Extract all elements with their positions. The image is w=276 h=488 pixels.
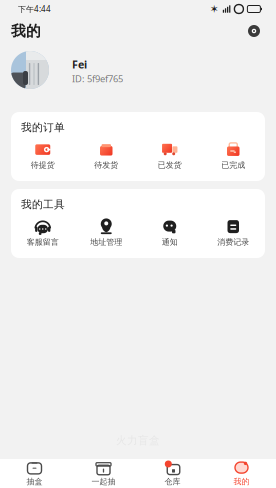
button[interactable]: 抽盒 [0,456,69,488]
staticText: ID: 5f9ef765 [72,72,123,85]
button[interactable]: 已发货 [138,142,201,170]
staticText: ✶ [210,3,219,15]
staticText: Fei [72,57,87,71]
staticText: 我的 [11,22,41,40]
button[interactable]: Settings [243,20,265,42]
button[interactable]: 客服留言 [11,219,74,247]
button[interactable]: 消费记录 [201,219,265,247]
staticText: 待发货 [94,160,118,170]
staticText: 地址管理 [90,237,122,247]
staticText: 消费记录 [217,237,249,247]
button[interactable]: 地址管理 [74,219,138,247]
button[interactable]: 已完成 [201,142,265,170]
staticText: 仓库 [164,477,180,486]
staticText: 火力盲盒 [116,434,160,447]
staticText: 下午4:44 [18,4,51,14]
button[interactable]: 我的 [207,456,276,488]
staticText: 已完成 [221,160,245,170]
button[interactable]: 仓库 [138,456,207,488]
staticText: 抽盒 [26,477,42,486]
staticText: 我的工具 [21,198,65,211]
button[interactable]: 一起抽 [69,456,138,488]
button[interactable]: 通知 [138,219,201,247]
button[interactable]: 待提货 [11,142,74,170]
staticText: 一起抽 [91,477,115,486]
staticText: 我的订单 [21,121,65,134]
staticText: 我的 [233,477,249,486]
staticText: 已发货 [158,160,182,170]
button[interactable]: 待发货 [74,142,138,170]
staticText: 待提货 [31,160,55,170]
staticText: 通知 [162,237,178,247]
staticText: 客服留言 [27,237,59,247]
